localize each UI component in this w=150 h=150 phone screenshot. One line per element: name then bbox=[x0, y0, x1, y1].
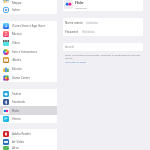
staticText: Musica bbox=[12, 32, 22, 36]
button[interactable]: iTunes Store e App Store bbox=[0, 21, 57, 30]
staticText: Flickr ti consente di archiviare, ordina… bbox=[65, 53, 145, 59]
button[interactable]: Mappe bbox=[0, 0, 57, 5]
button[interactable]: Adobe Reader bbox=[0, 129, 57, 138]
staticText: iBooks bbox=[12, 58, 22, 62]
staticText: Accedi bbox=[65, 45, 74, 49]
button[interactable]: Facebook bbox=[0, 98, 57, 106]
staticText: Yahoo! Inc. bbox=[75, 6, 88, 9]
staticText: Game Center bbox=[12, 76, 30, 80]
staticText: Foto e fotocamera bbox=[12, 50, 37, 54]
staticText: Flickr bbox=[75, 1, 84, 5]
button[interactable]: Game Center bbox=[0, 73, 57, 82]
button[interactable]: Air Video bbox=[0, 138, 57, 146]
button[interactable]: Video bbox=[0, 38, 57, 47]
button[interactable]: Twitter bbox=[0, 89, 57, 98]
staticText: Twitter bbox=[12, 92, 22, 96]
staticText: Nome utente bbox=[65, 21, 83, 25]
button[interactable]: iBooks bbox=[0, 56, 57, 64]
staticText: iTunes Store e App Store bbox=[12, 24, 46, 28]
staticText: Altro bbox=[12, 146, 19, 150]
staticText: Altro info su Flickr bbox=[65, 60, 87, 63]
button[interactable]: Safari bbox=[0, 5, 57, 14]
button[interactable]: Altro bbox=[0, 146, 57, 150]
button[interactable]: Nome utente bbox=[63, 18, 143, 27]
button[interactable]: Foto e fotocamera bbox=[0, 47, 57, 56]
staticText: Adobe Reader bbox=[12, 132, 32, 136]
staticText: Vimeo bbox=[12, 117, 21, 121]
button[interactable]: Accedi bbox=[63, 43, 143, 51]
staticText: Safari bbox=[12, 8, 20, 12]
button[interactable]: Vimeo bbox=[0, 115, 57, 123]
button[interactable]: Password bbox=[63, 27, 143, 36]
button[interactable]: Flickr bbox=[63, 0, 143, 11]
button[interactable]: Musica bbox=[0, 30, 57, 38]
staticText: Video bbox=[12, 41, 20, 45]
button[interactable]: Edicola bbox=[0, 64, 57, 73]
button[interactable]: Altro info su Flickr bbox=[65, 60, 87, 63]
staticText: Edicola bbox=[12, 67, 22, 71]
staticText: richiesto bbox=[86, 21, 98, 25]
staticText: Mappe bbox=[12, 1, 22, 5]
staticText: Air Video bbox=[12, 140, 25, 144]
staticText: Password bbox=[65, 30, 79, 34]
button[interactable]: Flickr bbox=[0, 106, 57, 115]
staticText: Richiesto bbox=[82, 30, 95, 34]
staticText: Facebook bbox=[12, 100, 25, 104]
staticText: Flickr bbox=[12, 109, 20, 113]
